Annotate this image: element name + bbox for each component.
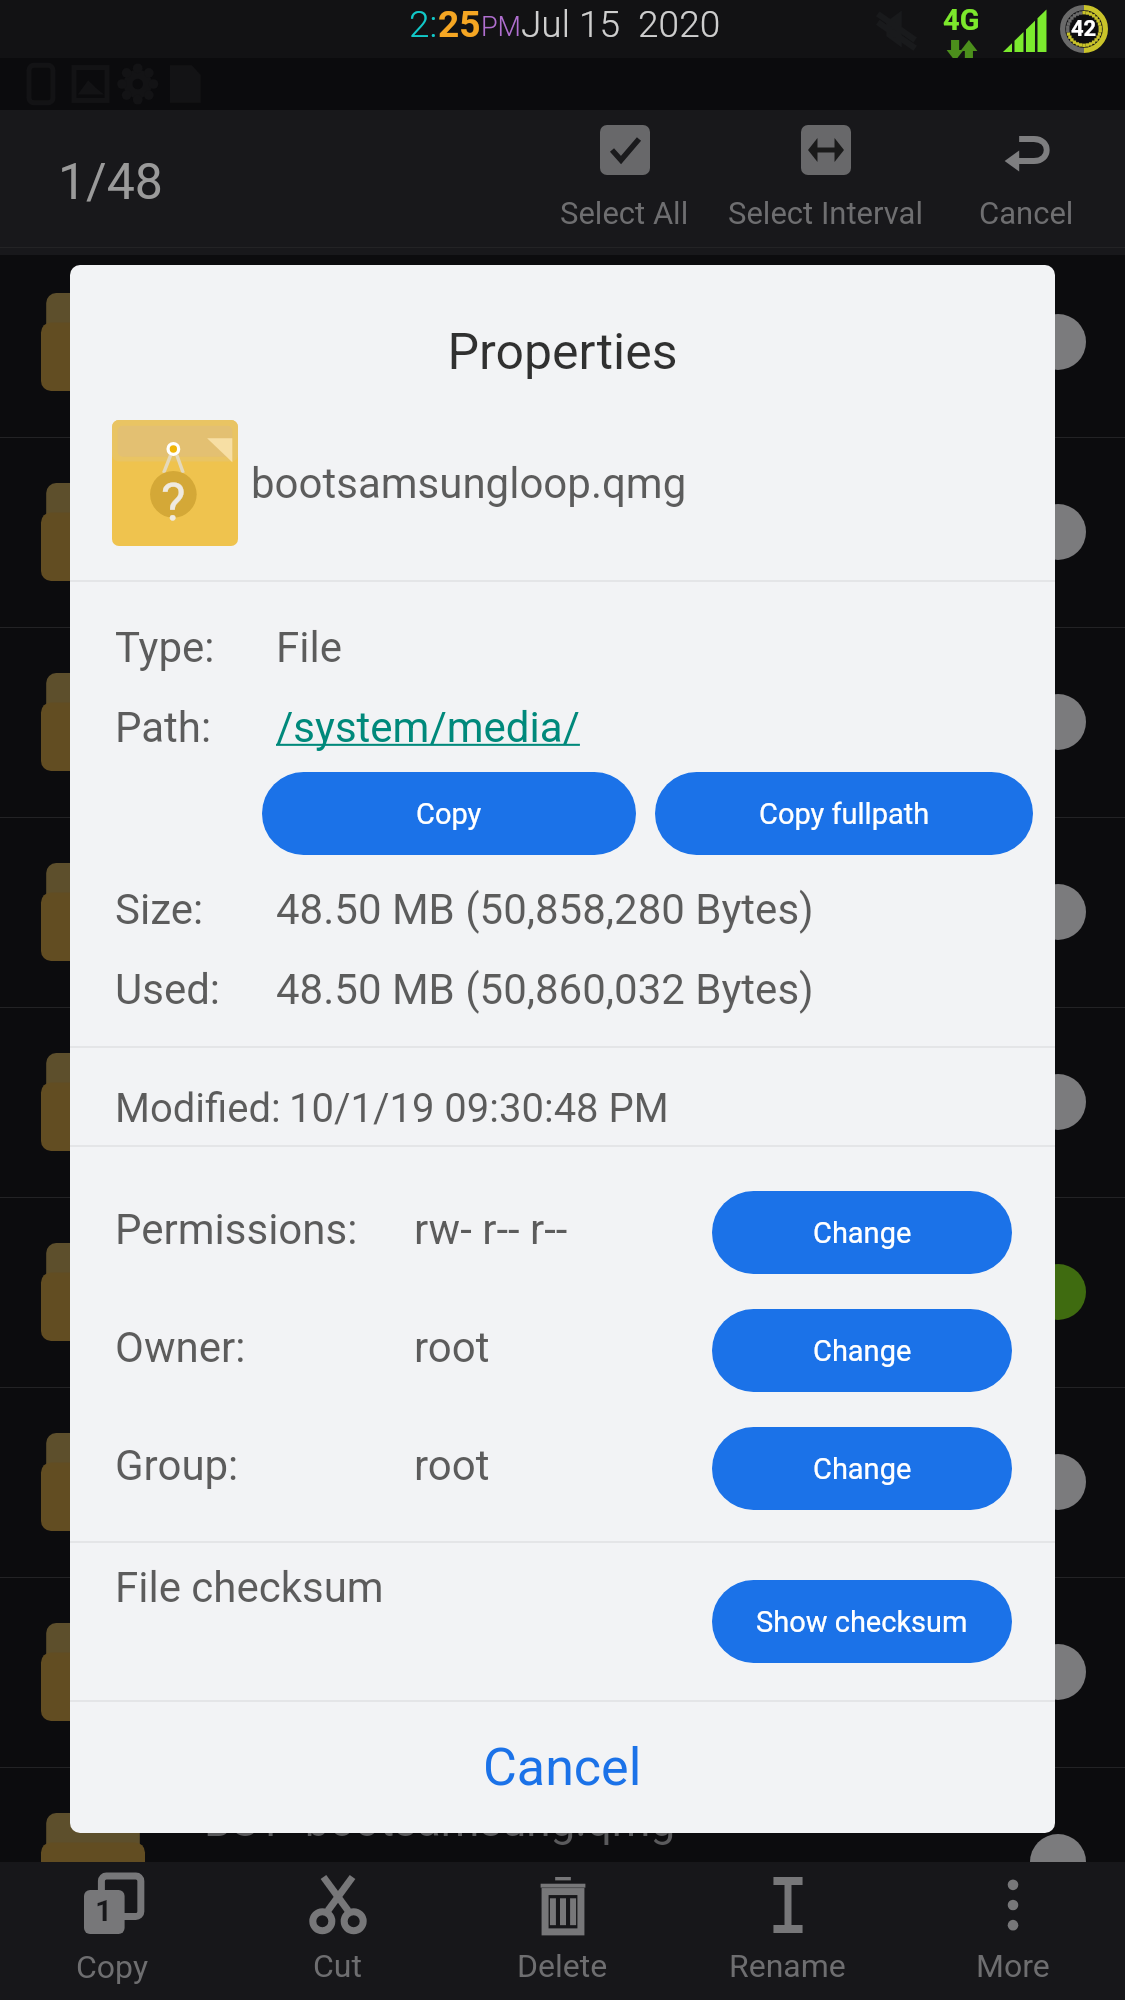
staticText: PM <box>481 11 521 43</box>
staticText: More <box>976 1947 1050 1985</box>
button[interactable]: Select All <box>524 110 724 255</box>
staticText: File checksum <box>115 1563 384 1612</box>
staticText: root <box>414 1441 490 1490</box>
staticText: 42 <box>1071 16 1097 42</box>
staticText: Cancel <box>483 1737 642 1798</box>
other: Mute <box>872 8 920 50</box>
button[interactable]: 1 <box>0 1862 225 2000</box>
staticText: Cancel <box>979 195 1074 231</box>
button[interactable]: Cut <box>225 1862 450 2000</box>
other: 4G network <box>943 3 980 61</box>
staticText: Jul 15 2020 <box>521 3 721 46</box>
other: Cancel selection <box>999 125 1055 175</box>
staticText: BST bootsamsung.qmg <box>204 845 676 897</box>
staticText: Type: <box>115 623 215 672</box>
staticText: ? <box>161 472 186 533</box>
staticText: BST bootsamsung.qmg <box>204 1225 676 1277</box>
staticText: 2019-10-01 21:30 48.50 MB <box>204 913 622 951</box>
staticText: Cut <box>313 1947 362 1985</box>
staticText: Permissions: <box>115 1205 358 1254</box>
button[interactable]: Cancel selection <box>926 110 1125 255</box>
button[interactable]: Show checksum <box>712 1580 1012 1663</box>
staticText: BST bootsamsung.qmg <box>204 1415 676 1467</box>
other: Battery 42 percent <box>1060 5 1108 53</box>
staticText: Used: <box>115 965 221 1014</box>
staticText: Owner: <box>115 1323 246 1372</box>
staticText: 1/48 <box>58 153 163 212</box>
staticText: 10/1/19 09:30:48 PM <box>289 1085 669 1132</box>
staticText: Modified: <box>115 1085 281 1132</box>
button[interactable]: Change <box>712 1309 1012 1392</box>
staticText: Change <box>813 1216 912 1250</box>
button[interactable]: Cancel <box>70 1701 1055 1833</box>
staticText: Size: <box>115 885 204 934</box>
button[interactable]: Copy <box>262 772 636 855</box>
staticText: 2019-10-01 21:30 48.50 MB <box>204 343 622 381</box>
staticText: Rename <box>729 1947 846 1985</box>
staticText: 48.50 MB (50,860,032 Bytes) <box>276 965 814 1014</box>
staticText: Copy <box>76 1948 149 1986</box>
staticText: Change <box>813 1334 912 1368</box>
staticText: bootsamsungloop.qmg <box>251 459 687 508</box>
staticText: Delete <box>517 1947 608 1985</box>
staticText: Select All <box>560 195 689 231</box>
staticText: rw- r-- r-- <box>414 1205 568 1254</box>
staticText: 2019-10-01 21:30 48.50 MB <box>204 1863 622 1901</box>
staticText: 2019-10-01 21:30 48.50 MB <box>204 1673 622 1711</box>
button[interactable]: Change <box>712 1427 1012 1510</box>
staticText: Change <box>813 1452 912 1486</box>
staticText: 4G <box>943 3 980 37</box>
staticText: 1 <box>95 1893 113 1928</box>
staticText: Show checksum <box>756 1605 968 1639</box>
button[interactable]: Rename <box>675 1862 900 2000</box>
staticText: Properties <box>70 323 1055 382</box>
staticText: 2: <box>409 3 438 46</box>
staticText: BST bootsamsung.qmg <box>204 655 676 707</box>
staticText: File <box>276 623 342 672</box>
staticText: BST bootsamsung.qmg <box>204 1795 676 1847</box>
staticText: 2019-10-01 21:30 48.50 MB <box>204 1103 622 1141</box>
button[interactable]: Select Interval <box>725 110 925 255</box>
staticText: 2019-10-01 21:30 48.50 MB <box>204 723 622 761</box>
staticText: Group: <box>115 1441 239 1490</box>
staticText: 25 <box>438 3 481 46</box>
button[interactable]: Delete <box>450 1862 675 2000</box>
staticText: Path: <box>115 703 212 752</box>
other: Signal strength <box>1003 7 1049 52</box>
button[interactable]: More <box>900 1862 1125 2000</box>
button[interactable]: Copy fullpath <box>655 772 1033 855</box>
staticText: Select Interval <box>728 195 923 231</box>
staticText: 2019-10-01 21:30 48.50 MB <box>204 1483 622 1521</box>
staticText: Copy <box>416 797 482 831</box>
button[interactable]: Change <box>712 1191 1012 1274</box>
staticText: root <box>414 1323 490 1372</box>
staticText: /system/media/ <box>276 703 580 752</box>
staticText: Copy fullpath <box>759 797 930 831</box>
staticText: 2019-10-01 21:30 48.50 MB <box>204 533 622 571</box>
staticText: 48.50 MB (50,858,280 Bytes) <box>276 885 814 934</box>
staticText: BST bootsamsung.qmg <box>204 465 676 517</box>
